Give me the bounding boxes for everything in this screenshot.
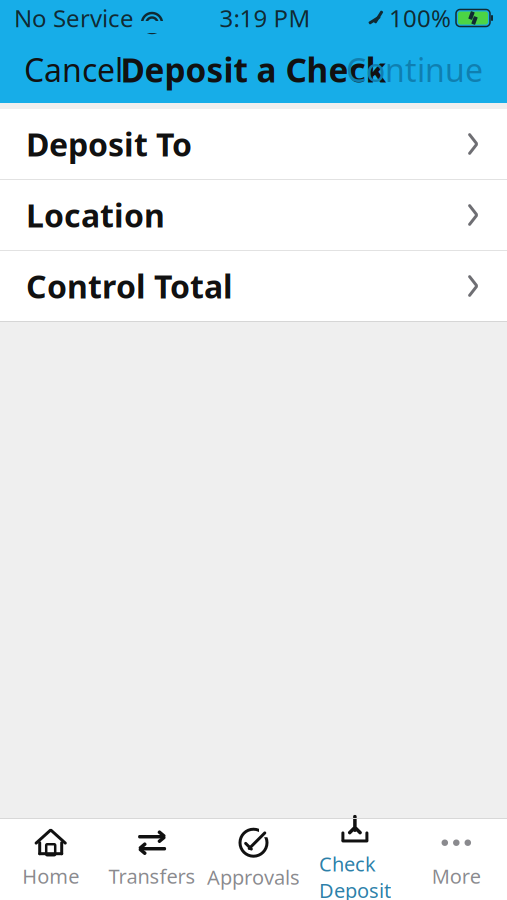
staticText: No Service: [14, 2, 134, 34]
staticText: Deposit To: [26, 123, 192, 165]
staticText: Location: [26, 194, 165, 236]
staticText: Control Total: [26, 265, 233, 307]
button[interactable]: Location: [0, 180, 507, 250]
button[interactable]: More: [406, 823, 507, 895]
button[interactable]: Approvals: [203, 823, 304, 895]
staticText: More: [432, 863, 481, 889]
button[interactable]: Continue: [332, 38, 497, 101]
staticText: 3:19 PM: [219, 2, 310, 34]
staticText: Continue: [346, 48, 483, 91]
button[interactable]: Deposit To: [0, 109, 507, 179]
staticText: Home: [22, 863, 79, 889]
button[interactable]: Control Total: [0, 251, 507, 321]
button[interactable]: Transfers: [101, 823, 203, 895]
staticText: 100%: [389, 2, 451, 34]
staticText: Transfers: [109, 863, 196, 889]
button[interactable]: Check Deposit: [304, 823, 406, 895]
button[interactable]: Cancel: [10, 38, 137, 101]
staticText: Approvals: [207, 864, 300, 890]
button[interactable]: Home: [0, 823, 101, 895]
staticText: Check Deposit: [319, 850, 391, 900]
staticText: Deposit a Check: [120, 47, 386, 92]
staticText: Cancel: [24, 48, 123, 91]
